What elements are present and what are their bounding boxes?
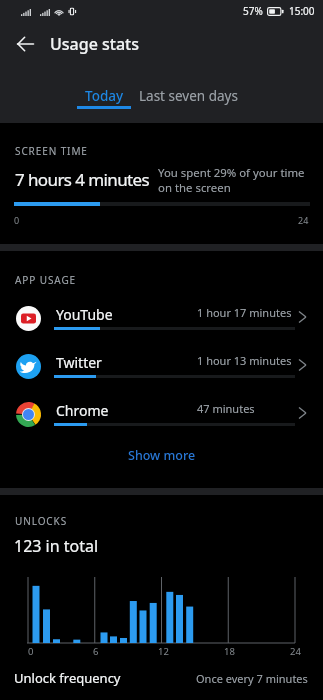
staticText: Once every 7 minutes bbox=[196, 671, 308, 686]
button[interactable]: Today bbox=[77, 85, 131, 123]
button[interactable]: YouTube bbox=[0, 294, 323, 342]
staticText: 1 hour 13 minutes bbox=[197, 353, 292, 368]
staticText: 7 hours 4 minutes bbox=[15, 168, 150, 191]
staticText: Last seven days bbox=[139, 87, 238, 105]
staticText: 0 bbox=[14, 214, 20, 226]
button[interactable]: Chrome bbox=[0, 390, 323, 438]
staticText: Twitter bbox=[56, 353, 102, 372]
button[interactable]: Back bbox=[0, 22, 50, 66]
staticText: 24 bbox=[290, 645, 301, 658]
staticText: Show more bbox=[128, 447, 196, 464]
staticText: 12 bbox=[158, 645, 169, 658]
staticText: APP USAGE bbox=[15, 273, 77, 287]
staticText: UNLOCKS bbox=[15, 514, 68, 528]
staticText: You spent 29% of your time on the screen bbox=[158, 165, 308, 195]
staticText: 18 bbox=[224, 645, 235, 658]
staticText: Usage stats bbox=[50, 33, 139, 55]
staticText: 24 bbox=[298, 214, 309, 226]
staticText: Chrome bbox=[56, 401, 109, 420]
button[interactable]: Last seven days bbox=[132, 85, 244, 123]
button[interactable]: Twitter bbox=[0, 342, 323, 390]
staticText: SCREEN TIME bbox=[15, 144, 88, 158]
staticText: 6 bbox=[93, 645, 99, 658]
staticText: Today bbox=[85, 87, 124, 105]
staticText: 1 hour 17 minutes bbox=[197, 305, 292, 320]
staticText: Unlock frequency bbox=[14, 669, 121, 687]
staticText: 15:00 bbox=[289, 4, 315, 18]
staticText: 123 in total bbox=[14, 535, 99, 557]
staticText: 47 minutes bbox=[197, 401, 255, 416]
button[interactable]: Show more bbox=[0, 435, 323, 475]
staticText: 0 bbox=[28, 645, 34, 658]
staticText: 57% bbox=[243, 4, 263, 18]
staticText: YouTube bbox=[56, 305, 113, 324]
